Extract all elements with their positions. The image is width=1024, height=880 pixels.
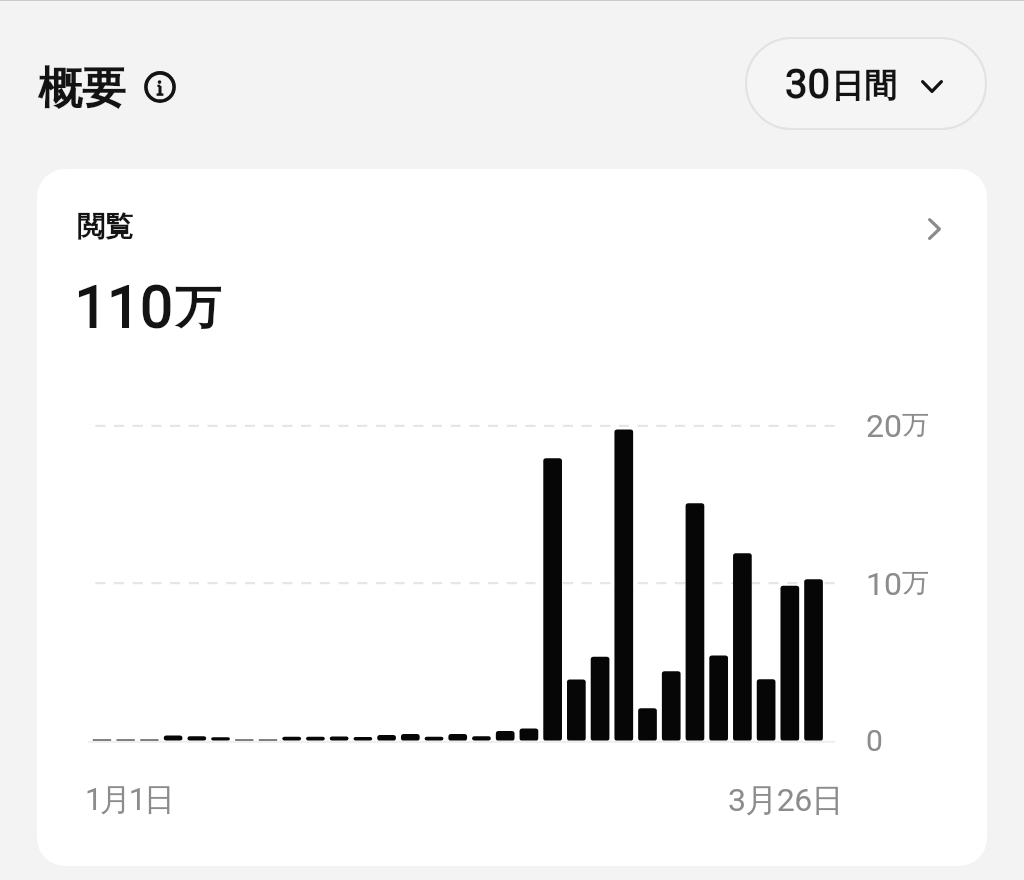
staticText: 1月1日 (85, 780, 173, 819)
other: 詳細を表示 (928, 218, 941, 240)
staticText: 10 (866, 565, 902, 603)
button[interactable]: 概要 (38, 61, 177, 116)
button[interactable]: 閲覧 (57, 193, 957, 265)
staticText: 閲覧 (77, 209, 133, 244)
staticText: 日間 (831, 65, 897, 107)
staticText: 30 (785, 61, 830, 108)
staticText: 110 (75, 273, 173, 341)
staticText: 万 (902, 408, 929, 442)
button[interactable]: 30 (746, 38, 986, 129)
other: 期間を選択 (921, 80, 943, 93)
staticText: 20 (866, 407, 902, 445)
other: 情報 (143, 69, 177, 103)
staticText: 万 (902, 566, 929, 600)
staticText: 3月26日 (728, 780, 843, 820)
staticText: 概要 (38, 61, 126, 116)
staticText: 万 (175, 279, 221, 337)
staticText: 0 (866, 723, 883, 758)
